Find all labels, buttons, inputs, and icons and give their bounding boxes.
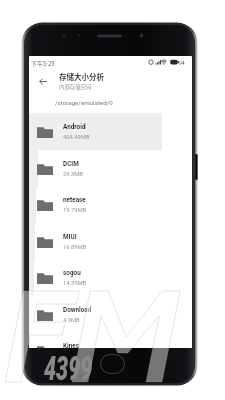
staticText: 14.35MB [63,280,87,287]
staticText: DCIM [63,160,79,168]
staticText: /storage/emulated/0 [55,99,113,106]
staticText: Download [63,306,92,314]
staticText: 29.3MB [63,171,83,178]
staticText: Android [63,123,86,131]
button[interactable]: Kines [29,332,192,348]
staticText: MIUI [63,233,77,241]
button[interactable]: MIUI [29,223,192,260]
staticText: 4399 [44,350,93,388]
staticText: 下午5:25 [31,59,55,68]
staticText: 存储大小分析 [59,71,104,82]
button[interactable]: Back [34,73,51,90]
button[interactable]: Download [29,296,192,333]
button[interactable]: Android [29,113,192,150]
staticText: 94 [179,60,185,66]
staticText: 内部存储空间 [59,83,92,91]
staticText: netease [63,196,86,204]
button[interactable]: sogou [29,259,192,296]
staticText: Kines [63,342,80,348]
button[interactable]: DCIM [29,150,192,187]
staticText: 4.9MB [63,317,80,324]
button[interactable]: netease [29,186,192,223]
staticText: 404.49MB [63,134,90,141]
staticText: sogou [63,269,81,277]
staticText: 19.79MB [63,207,87,214]
staticText: 16.89MB [63,244,87,251]
